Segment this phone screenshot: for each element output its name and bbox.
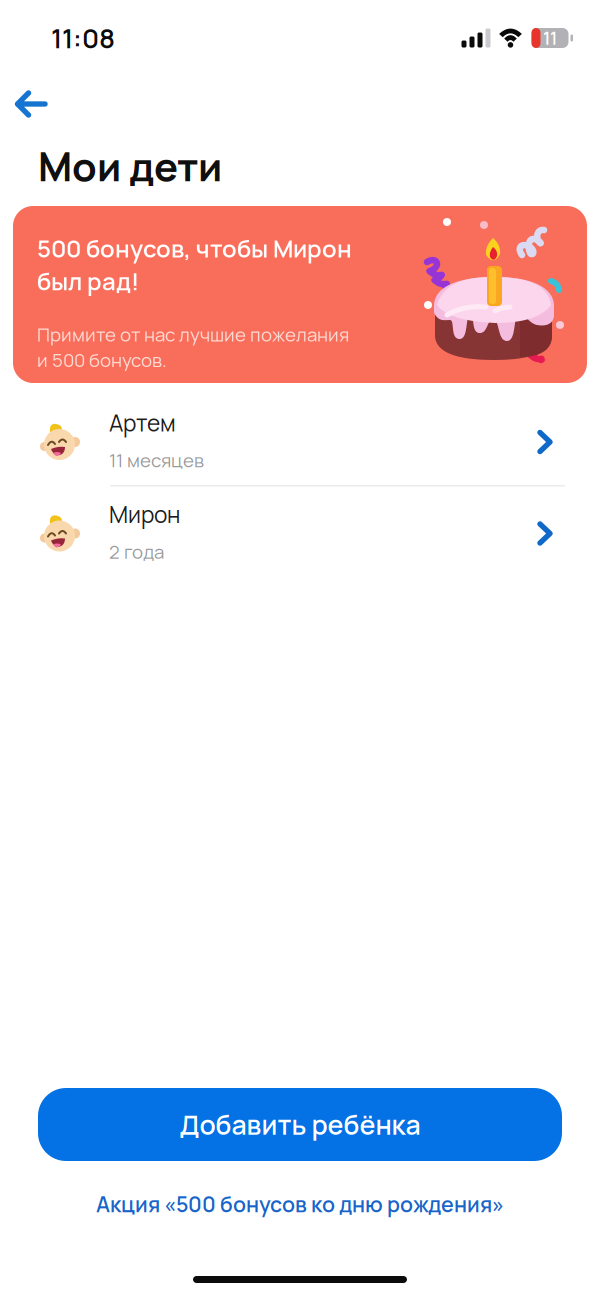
staticText: Добавить ребёнка xyxy=(179,1106,420,1143)
staticText: 500 бонусов, чтобы Мирон был рад! xyxy=(37,232,352,298)
staticText: 11 xyxy=(543,26,557,50)
button[interactable]: Мирон xyxy=(0,486,600,576)
staticText: 2 года xyxy=(109,539,164,564)
staticText: Примите от нас лучшие пожелания и 500 бо… xyxy=(37,322,349,373)
staticText: 11:08 xyxy=(51,20,115,56)
button[interactable]: Добавить ребёнка xyxy=(38,1088,562,1161)
button[interactable]: Back xyxy=(0,84,48,132)
staticText: Мирон xyxy=(109,499,180,530)
staticText: Акция «500 бонусов ко дню рождения» xyxy=(96,1189,504,1218)
button[interactable]: Акция «500 бонусов ко дню рождения» xyxy=(0,1187,600,1221)
button[interactable]: 500 бонусов, чтобы Мирон был рад! xyxy=(13,206,587,383)
staticText: Артем xyxy=(109,407,176,438)
staticText: Мои дети xyxy=(38,139,222,193)
staticText: 11 месяцев xyxy=(109,447,204,473)
button[interactable]: Артем xyxy=(0,395,600,485)
